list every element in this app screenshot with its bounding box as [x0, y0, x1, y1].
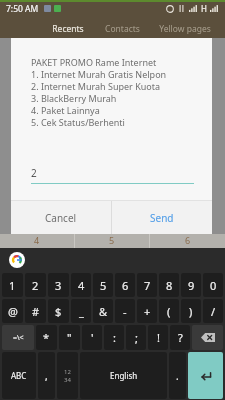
- button[interactable]: ": [59, 325, 80, 350]
- button[interactable]: ABC: [2, 352, 36, 399]
- button[interactable]: ?: [170, 325, 190, 350]
- staticText: #: [32, 304, 40, 319]
- button[interactable]: ;: [126, 325, 146, 350]
- button[interactable]: Yellow pages: [150, 20, 219, 38]
- staticText: /: [211, 304, 216, 319]
- staticText: 2. Internet Murah Super Kuota: [31, 80, 161, 92]
- staticText: Send: [150, 211, 174, 225]
- staticText: 4: [34, 234, 40, 246]
- button[interactable]: Backspace: [192, 325, 223, 350]
- button[interactable]: Enter: [188, 352, 223, 399]
- button[interactable]: #: [25, 299, 46, 323]
- staticText: 1. Internet Murah Gratis Nelpon: [31, 68, 167, 80]
- staticText: ": [67, 330, 72, 345]
- button[interactable]: 4: [71, 273, 91, 297]
- staticText: +: [144, 304, 151, 319]
- button[interactable]: 9: [181, 273, 201, 297]
- staticText: 4: [78, 278, 85, 293]
- button[interactable]: 1: [2, 273, 23, 297]
- staticText: 7:50 AM: [6, 3, 39, 15]
- button[interactable]: 3: [48, 273, 69, 297]
- button[interactable]: 7: [137, 273, 157, 297]
- staticText: 34: [64, 376, 71, 384]
- staticText: PAKET PROMO Rame Internet: [31, 56, 157, 68]
- button[interactable]: English: [80, 352, 167, 399]
- button[interactable]: /: [203, 299, 223, 323]
- staticText: ): [189, 304, 193, 319]
- button[interactable]: Send: [112, 201, 212, 234]
- staticText: !: [157, 330, 160, 345]
- button[interactable]: -: [115, 299, 135, 323]
- staticText: $: [55, 304, 62, 319]
- staticText: =\<: [13, 333, 24, 343]
- staticText: 1: [9, 278, 16, 293]
- button[interactable]: =\<: [2, 325, 34, 350]
- button[interactable]: Recents: [40, 20, 95, 38]
- staticText: 5: [100, 278, 107, 293]
- staticText: 2: [32, 278, 39, 293]
- staticText: 4. Paket Lainnya: [31, 104, 100, 116]
- staticText: ,: [45, 369, 48, 383]
- staticText: Yellow pages: [159, 23, 211, 35]
- staticText: (: [167, 304, 171, 319]
- button[interactable]: .: [169, 352, 186, 399]
- staticText: ?: [178, 330, 183, 345]
- staticText: 5. Cek Status/Berhenti: [31, 116, 125, 128]
- staticText: *: [43, 330, 50, 345]
- staticText: :: [113, 330, 116, 345]
- staticText: 7: [144, 278, 151, 293]
- button[interactable]: Contacts: [95, 20, 150, 38]
- staticText: 2: [31, 166, 37, 180]
- staticText: H: [201, 3, 207, 14]
- button[interactable]: $: [48, 299, 69, 323]
- staticText: 3. BlackBerry Murah: [31, 92, 117, 104]
- button[interactable]: +: [137, 299, 157, 323]
- staticText: _: [79, 304, 84, 319]
- staticText: 5: [109, 234, 115, 246]
- button[interactable]: 5: [93, 273, 113, 297]
- button[interactable]: &: [93, 299, 113, 323]
- button[interactable]: *: [36, 325, 57, 350]
- staticText: Recents: [52, 23, 84, 35]
- staticText: 9: [188, 278, 195, 293]
- staticText: .: [176, 369, 179, 383]
- staticText: -: [123, 304, 127, 319]
- button[interactable]: ): [181, 299, 201, 323]
- staticText: 6: [185, 234, 191, 246]
- button[interactable]: :: [104, 325, 124, 350]
- button[interactable]: Google: [9, 252, 25, 268]
- button[interactable]: 8: [159, 273, 179, 297]
- staticText: 3: [55, 278, 62, 293]
- button[interactable]: 12: [57, 352, 78, 399]
- button[interactable]: _: [71, 299, 91, 323]
- button[interactable]: Cancel: [11, 201, 111, 234]
- staticText: 6: [122, 278, 129, 293]
- button[interactable]: 0: [203, 273, 223, 297]
- staticText: ;: [135, 330, 138, 345]
- button[interactable]: ,: [38, 352, 55, 399]
- button[interactable]: ': [82, 325, 102, 350]
- button[interactable]: 6: [115, 273, 135, 297]
- staticText: &: [99, 304, 108, 319]
- staticText: ': [91, 330, 94, 345]
- staticText: English: [110, 370, 138, 381]
- button[interactable]: !: [148, 325, 168, 350]
- staticText: 8: [166, 278, 173, 293]
- staticText: @: [8, 304, 18, 319]
- staticText: 12: [64, 368, 71, 376]
- staticText: ABC: [11, 370, 27, 381]
- button[interactable]: @: [2, 299, 23, 323]
- button[interactable]: 2: [25, 273, 46, 297]
- staticText: 0: [210, 278, 217, 293]
- staticText: Cancel: [45, 211, 77, 225]
- staticText: Contacts: [105, 23, 140, 35]
- button[interactable]: (: [159, 299, 179, 323]
